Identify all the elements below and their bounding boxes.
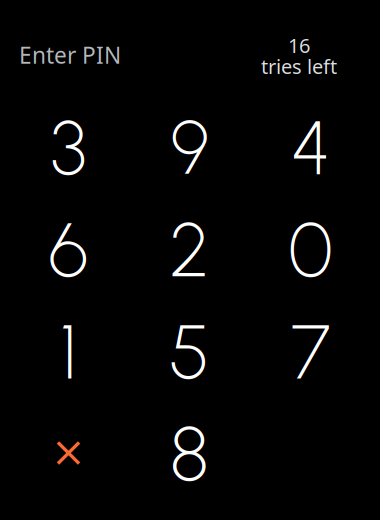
button[interactable]: 4 — [250, 97, 371, 199]
staticText: 5 — [169, 307, 210, 397]
button[interactable]: 2 — [129, 199, 250, 301]
button[interactable]: 5 — [129, 301, 250, 403]
staticText: 3 — [50, 103, 86, 193]
staticText: 4 — [291, 103, 330, 193]
staticText: 2 — [169, 205, 209, 295]
button[interactable]: 6 — [8, 199, 129, 301]
button[interactable]: 1 — [8, 301, 129, 403]
staticText: 0 — [288, 205, 332, 295]
button[interactable]: Delete — [8, 403, 129, 505]
staticText: 16 — [288, 32, 310, 59]
staticText: tries left — [261, 53, 337, 80]
staticText: 9 — [170, 103, 208, 193]
button[interactable]: 7 — [250, 301, 371, 403]
staticText: 1 — [60, 307, 77, 397]
staticText: 6 — [48, 205, 88, 295]
button[interactable]: 8 — [129, 403, 250, 505]
button[interactable]: 9 — [129, 97, 250, 199]
staticText: 8 — [170, 409, 209, 499]
button[interactable]: 3 — [8, 97, 129, 199]
staticText: Enter PIN — [19, 40, 121, 70]
staticText: 7 — [291, 307, 330, 397]
button[interactable]: 0 — [250, 199, 371, 301]
